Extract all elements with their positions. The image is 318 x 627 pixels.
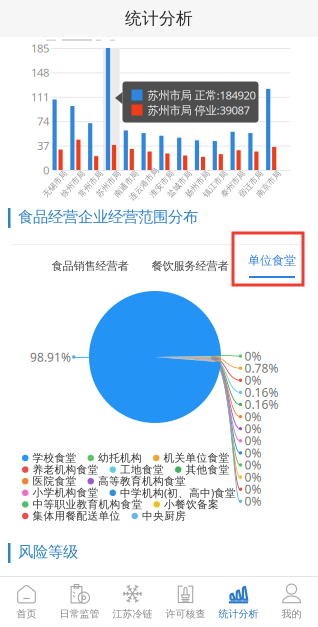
staticText: 风险等级 xyxy=(18,542,78,562)
button[interactable]: 江苏冷链 xyxy=(106,577,159,627)
staticText: 江苏冷链 xyxy=(112,608,152,620)
staticText: 首页 xyxy=(16,608,36,620)
staticText: 泰州市局 xyxy=(217,179,249,189)
button[interactable]: 许可核查 xyxy=(159,577,212,627)
staticText: 无锡市局 xyxy=(39,179,71,189)
staticText: 0% xyxy=(244,420,261,437)
staticText: 0% xyxy=(244,493,261,509)
staticText: 学校食堂 xyxy=(32,451,76,465)
button[interactable]: 单位食堂 xyxy=(242,246,302,288)
staticText: 日常监管 xyxy=(59,608,99,620)
staticText: 工地食堂 xyxy=(120,463,164,476)
staticText: 餐饮服务经营者 xyxy=(151,259,228,273)
button[interactable]: 餐饮服务经营者 xyxy=(145,246,235,286)
button[interactable]: 统计分析 xyxy=(212,577,265,627)
staticText: 0% xyxy=(244,432,261,449)
staticText: 镇江市局 xyxy=(199,179,231,189)
staticText: 食品销售经营者 xyxy=(51,259,128,273)
button[interactable]: 我的 xyxy=(265,577,318,627)
staticText: 148 xyxy=(31,65,49,80)
staticText: 111 xyxy=(31,89,49,104)
button[interactable]: 首页 xyxy=(0,577,53,627)
staticText: 0% xyxy=(244,469,261,485)
staticText: 0.16% xyxy=(244,384,278,400)
staticText: 我的 xyxy=(281,608,301,620)
staticText: 常州市局 xyxy=(75,179,107,189)
staticText: 食品经营企业经营范围分布 xyxy=(18,207,198,227)
staticText: 0% xyxy=(244,348,261,364)
staticText: 统计分析 xyxy=(125,8,193,29)
staticText: 南通市局 xyxy=(110,179,142,189)
staticText: 0% xyxy=(244,481,261,497)
staticText: 0.16% xyxy=(244,396,278,412)
staticText: 养老机构食堂 xyxy=(32,463,98,476)
staticText: 0.78% xyxy=(244,360,278,376)
staticText: 0% xyxy=(244,408,261,425)
staticText: 0% xyxy=(244,445,261,461)
staticText: 74 xyxy=(37,113,49,129)
button[interactable]: 日常监管 xyxy=(53,577,106,627)
staticText: 0% xyxy=(244,372,261,388)
staticText: 连云港市局 xyxy=(124,179,164,189)
staticText: 中学机构(初、高中)食堂 xyxy=(120,485,236,500)
staticText: 高等教育机构食堂 xyxy=(98,474,186,488)
staticText: 南京市局 xyxy=(253,179,285,189)
staticText: 机关单位食堂 xyxy=(163,451,229,465)
staticText: 苏州市局 正常:184920 xyxy=(147,87,255,103)
staticText: 许可核查 xyxy=(165,608,205,620)
button[interactable]: 食品销售经营者 xyxy=(45,246,135,286)
staticText: 苏州市局 停业:39087 xyxy=(147,102,249,118)
staticText: 其他食堂 xyxy=(185,463,229,476)
staticText: 单位食堂 xyxy=(248,253,296,268)
staticText: 盐城市局 xyxy=(164,179,196,189)
staticText: 淮安市局 xyxy=(146,179,178,189)
staticText: 37 xyxy=(37,138,49,153)
staticText: 0% xyxy=(244,457,261,473)
staticText: 医院食堂 xyxy=(32,474,76,488)
staticText: 小学机构食堂 xyxy=(32,486,98,499)
staticText: 徐州市局 xyxy=(57,179,89,189)
staticText: 中等职业教育机构食堂 xyxy=(32,498,142,511)
staticText: 宿迁市局 xyxy=(235,179,267,189)
staticText: 扬州市局 xyxy=(181,179,213,189)
staticText: 幼托机构 xyxy=(98,451,142,465)
staticText: 中央厨房 xyxy=(142,509,186,523)
staticText: 统计分析 xyxy=(218,608,258,620)
staticText: 集体用餐配送单位 xyxy=(32,509,120,523)
staticText: 苏州市局 xyxy=(92,179,124,189)
staticText: 0 xyxy=(43,162,49,178)
staticText: 185 xyxy=(31,40,49,56)
staticText: 98.91% xyxy=(30,349,71,365)
staticText: 小餐饮备案 xyxy=(164,498,219,511)
